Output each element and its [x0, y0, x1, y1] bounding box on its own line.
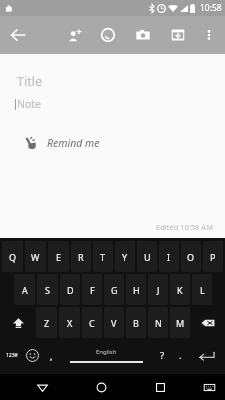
button[interactable]: T	[93, 241, 113, 272]
staticText: D	[67, 284, 74, 296]
button[interactable]: A	[14, 274, 35, 305]
staticText: J	[157, 284, 160, 296]
staticText: 10:58	[200, 2, 222, 14]
button[interactable]: Title	[0, 70, 225, 92]
button[interactable]: More options	[196, 22, 222, 48]
button[interactable]: C	[82, 307, 102, 338]
staticText: English	[96, 348, 117, 356]
staticText: Y	[122, 251, 128, 263]
button[interactable]: Remind me	[0, 132, 225, 154]
staticText: X	[67, 317, 73, 329]
staticText: R	[78, 251, 84, 263]
staticText: Note	[17, 97, 42, 111]
button[interactable]: B	[126, 307, 146, 338]
staticText: S	[45, 284, 50, 296]
button[interactable]: H	[126, 274, 146, 305]
button[interactable]: Backspace	[192, 307, 223, 338]
button[interactable]: Back	[30, 375, 54, 399]
button[interactable]: Take photo	[130, 22, 156, 48]
staticText: F	[90, 284, 95, 296]
button[interactable]: S	[37, 274, 58, 305]
staticText: M	[176, 317, 185, 329]
staticText: H	[133, 284, 140, 296]
button[interactable]: .	[172, 339, 189, 372]
button[interactable]: E	[48, 241, 69, 272]
button[interactable]: Switch keyboard	[197, 375, 221, 399]
button[interactable]: M	[170, 307, 190, 338]
staticText: O	[187, 251, 195, 263]
button[interactable]: U	[137, 241, 157, 272]
button[interactable]: Y	[115, 241, 135, 272]
staticText: Title	[17, 73, 42, 90]
staticText: B	[133, 317, 139, 329]
staticText: V	[111, 317, 117, 329]
staticText: G	[111, 284, 118, 296]
staticText: P	[210, 251, 216, 263]
button[interactable]: Note	[0, 92, 225, 116]
button[interactable]: W	[25, 241, 46, 272]
staticText: .	[179, 349, 182, 362]
staticText: W	[31, 251, 40, 263]
staticText: Z	[44, 317, 50, 329]
staticText: N	[155, 317, 162, 329]
button[interactable]: Recent apps	[148, 375, 172, 399]
staticText: Q	[9, 251, 17, 263]
button[interactable]: L	[192, 274, 212, 305]
button[interactable]: O	[181, 241, 201, 272]
staticText: 123#	[6, 352, 18, 359]
button[interactable]: P	[203, 241, 223, 272]
button[interactable]: Q	[2, 241, 23, 272]
button[interactable]: Add collaborator	[60, 22, 86, 48]
button[interactable]: Home	[89, 375, 113, 399]
staticText: K	[177, 284, 183, 296]
button[interactable]: D	[60, 274, 80, 305]
staticText: Edited 10:58 AM	[156, 222, 213, 232]
button[interactable]: Back	[5, 22, 31, 48]
staticText: T	[100, 251, 106, 263]
staticText: C	[89, 317, 95, 329]
staticText: L	[200, 284, 205, 296]
button[interactable]: Z	[36, 307, 57, 338]
button[interactable]: ?	[152, 339, 172, 372]
button[interactable]: Archive	[165, 22, 191, 48]
button[interactable]: 123#	[1, 339, 22, 372]
staticText: ?	[160, 349, 165, 362]
button[interactable]: Enter	[190, 340, 223, 371]
button[interactable]: I	[159, 241, 179, 272]
staticText: E	[56, 251, 62, 263]
staticText: I	[167, 251, 171, 263]
button[interactable]: Change color	[95, 22, 121, 48]
button[interactable]: X	[59, 307, 80, 338]
button[interactable]: F	[82, 274, 102, 305]
button[interactable]: N	[148, 307, 168, 338]
button[interactable]: Emoji	[22, 339, 42, 372]
button[interactable]: Space	[61, 339, 152, 372]
staticText: ,	[50, 350, 53, 362]
staticText: Remind me	[47, 136, 100, 150]
staticText: U	[144, 251, 151, 263]
button[interactable]: G	[104, 274, 124, 305]
button[interactable]: R	[71, 241, 91, 272]
staticText: A	[22, 284, 28, 296]
button[interactable]: J	[148, 274, 168, 305]
button[interactable]: Shift	[2, 307, 34, 338]
button[interactable]: ,	[42, 339, 61, 372]
button[interactable]: K	[170, 274, 190, 305]
button[interactable]: V	[104, 307, 124, 338]
